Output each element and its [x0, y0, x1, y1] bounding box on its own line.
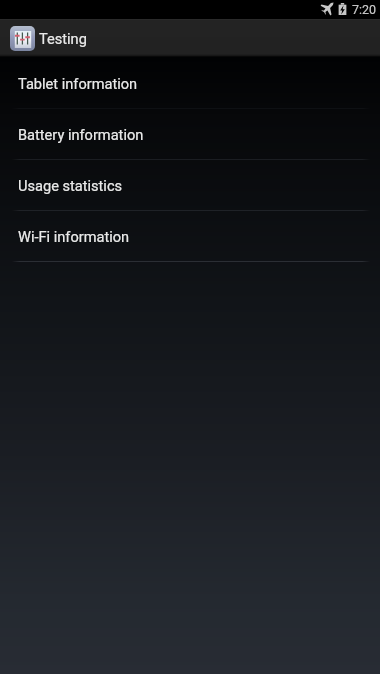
button[interactable]: Tablet information [0, 58, 380, 109]
staticText: Testing [39, 30, 87, 47]
staticText: Wi-Fi information [18, 228, 130, 245]
other: Airplane mode [322, 2, 335, 13]
button[interactable]: Usage statistics [0, 160, 380, 211]
button[interactable]: Testing [0, 19, 97, 57]
button[interactable]: Wi-Fi information [0, 211, 380, 262]
staticText: Usage statistics [18, 177, 123, 194]
other: Battery charging [338, 3, 347, 15]
staticText: Battery information [18, 126, 144, 143]
staticText: Tablet information [18, 75, 138, 92]
staticText: 7:20 [352, 2, 377, 17]
button[interactable]: Battery information [0, 109, 380, 160]
